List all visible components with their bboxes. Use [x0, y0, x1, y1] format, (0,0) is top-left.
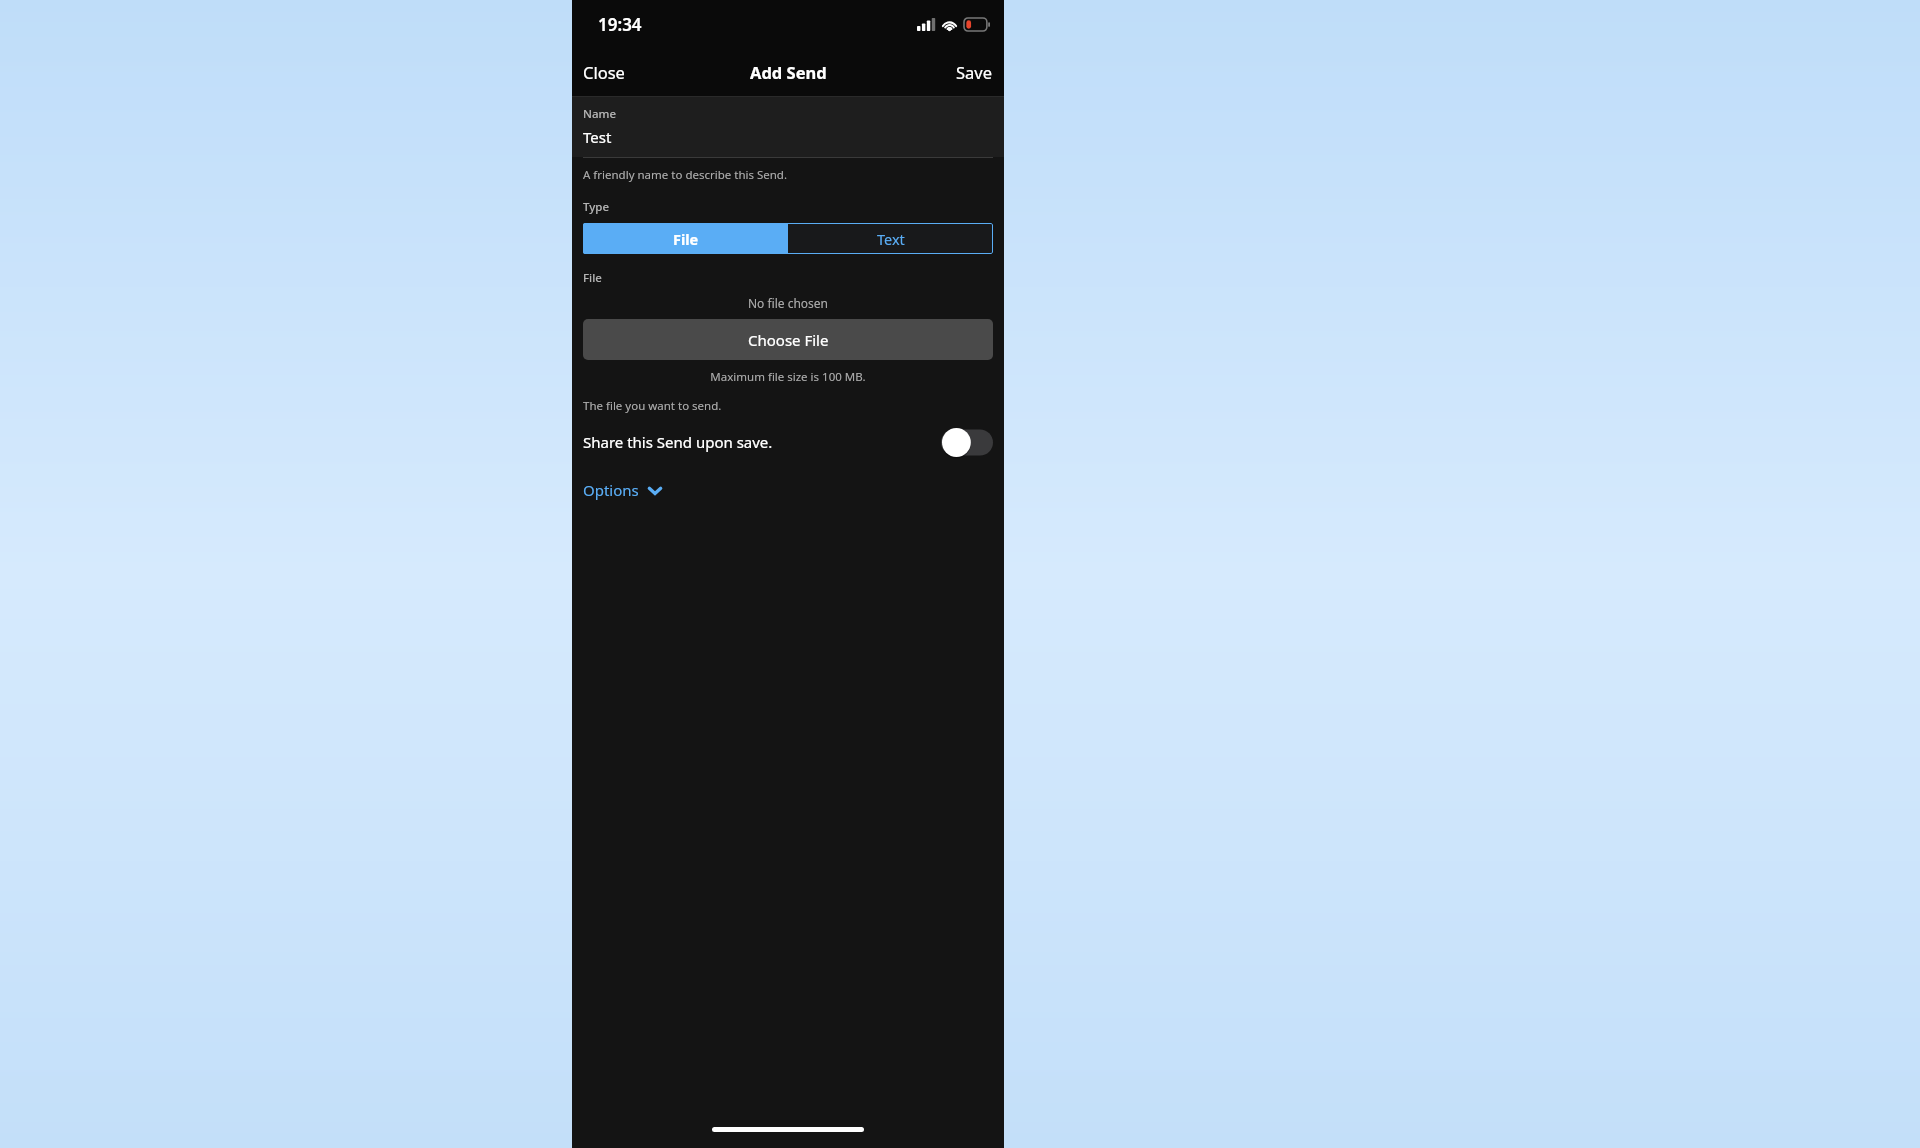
- staticText: File: [673, 229, 699, 249]
- button[interactable]: Name: [572, 97, 1004, 157]
- staticText: Choose File: [748, 330, 829, 350]
- staticText: Share this Send upon save.: [583, 432, 773, 452]
- button[interactable]: Save: [945, 53, 1004, 91]
- staticText: No file chosen: [572, 295, 1004, 311]
- staticText: Name: [583, 106, 616, 122]
- staticText: Text: [877, 229, 905, 249]
- staticText: Type: [583, 199, 610, 215]
- other: Expand options: [647, 485, 663, 496]
- button[interactable]: File: [583, 223, 788, 254]
- staticText: Close: [583, 61, 625, 83]
- button[interactable]: Options: [572, 470, 677, 510]
- staticText: Save: [956, 61, 993, 83]
- staticText: Add Send: [750, 61, 827, 83]
- staticText: 19:34: [598, 13, 642, 36]
- button[interactable]: Share this Send upon save.: [572, 414, 1004, 470]
- staticText: Test: [583, 127, 612, 147]
- staticText: File: [583, 270, 602, 286]
- staticText: Maximum file size is 100 MB.: [572, 369, 1004, 385]
- button[interactable]: Text: [788, 223, 993, 254]
- staticText: Options: [583, 480, 639, 500]
- button[interactable]: Close: [572, 53, 636, 91]
- button[interactable]: Choose File: [583, 319, 993, 360]
- staticText: The file you want to send.: [583, 398, 722, 414]
- staticText: A friendly name to describe this Send.: [583, 167, 788, 183]
